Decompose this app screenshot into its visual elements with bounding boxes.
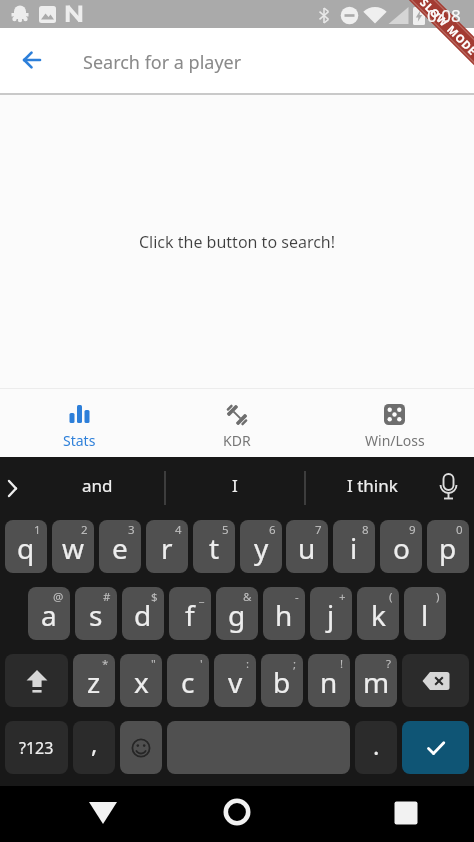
- button[interactable]: o: [380, 520, 422, 573]
- button[interactable]: u: [286, 520, 328, 573]
- staticText: @: [53, 589, 64, 605]
- staticText: e: [112, 529, 128, 567]
- staticText: a: [41, 596, 57, 634]
- staticText: t: [209, 529, 220, 567]
- staticText: #: [103, 589, 111, 605]
- staticText: (: [389, 589, 393, 605]
- staticText: 4: [175, 522, 182, 538]
- button[interactable]: l: [404, 587, 446, 640]
- staticText: and: [82, 474, 113, 497]
- button[interactable]: n: [308, 654, 350, 707]
- button[interactable]: [402, 721, 469, 774]
- button[interactable]: e: [99, 520, 141, 573]
- button[interactable]: s: [75, 587, 117, 640]
- button[interactable]: c: [167, 654, 209, 707]
- button[interactable]: d: [122, 587, 164, 640]
- button[interactable]: p: [427, 520, 469, 573]
- staticText: I think: [347, 474, 398, 497]
- staticText: d: [134, 596, 152, 634]
- staticText: :: [246, 656, 250, 672]
- button[interactable]: [5, 654, 68, 707]
- staticText: v: [228, 663, 243, 701]
- button[interactable]: [22, 50, 42, 70]
- staticText: +: [339, 589, 346, 605]
- button[interactable]: [385, 795, 427, 831]
- staticText: ': [200, 656, 203, 672]
- button[interactable]: v: [214, 654, 256, 707]
- staticText: $: [151, 589, 158, 605]
- staticText: z: [87, 663, 101, 701]
- staticText: k: [371, 596, 386, 634]
- staticText: -: [295, 589, 299, 605]
- button[interactable]: i: [333, 520, 375, 573]
- staticText: n: [320, 663, 338, 701]
- staticText: p: [439, 529, 457, 567]
- staticText: r: [161, 529, 173, 567]
- staticText: 1: [34, 522, 41, 538]
- staticText: ": [151, 656, 156, 672]
- staticText: Win/Loss: [365, 431, 425, 450]
- button[interactable]: z: [73, 654, 115, 707]
- staticText: l: [421, 596, 429, 634]
- button[interactable]: g: [216, 587, 258, 640]
- button[interactable]: k: [357, 587, 399, 640]
- staticText: Click the button to search!: [139, 231, 336, 253]
- button[interactable]: .: [355, 721, 397, 774]
- staticText: Stats: [63, 431, 96, 450]
- staticText: q: [17, 529, 35, 567]
- button[interactable]: t: [193, 520, 235, 573]
- staticText: m: [363, 663, 390, 701]
- staticText: 7: [315, 522, 322, 538]
- button[interactable]: q: [5, 520, 47, 573]
- staticText: x: [134, 663, 149, 701]
- button[interactable]: h: [263, 587, 305, 640]
- button[interactable]: [402, 654, 469, 707]
- button[interactable]: a: [28, 587, 70, 640]
- button[interactable]: r: [146, 520, 188, 573]
- staticText: ;: [293, 656, 297, 672]
- button[interactable]: w: [52, 520, 94, 573]
- button[interactable]: f: [169, 587, 211, 640]
- staticText: I: [232, 474, 238, 497]
- staticText: 8: [362, 522, 369, 538]
- staticText: 3: [128, 522, 135, 538]
- button[interactable]: I think: [305, 457, 440, 513]
- button[interactable]: ?123: [5, 721, 68, 774]
- staticText: 9: [409, 522, 416, 538]
- button[interactable]: j: [310, 587, 352, 640]
- staticText: ,: [91, 727, 98, 760]
- staticText: ): [436, 589, 440, 605]
- staticText: 6: [269, 522, 276, 538]
- staticText: &: [243, 589, 252, 605]
- button[interactable]: b: [261, 654, 303, 707]
- button[interactable]: y: [240, 520, 282, 573]
- button[interactable]: [216, 791, 258, 833]
- staticText: h: [275, 596, 293, 634]
- button[interactable]: and: [30, 457, 165, 513]
- button[interactable]: x: [120, 654, 162, 707]
- staticText: 0: [456, 522, 463, 538]
- button[interactable]: [167, 721, 350, 774]
- staticText: Search for a player: [83, 50, 242, 75]
- staticText: w: [62, 529, 85, 567]
- staticText: u: [298, 529, 316, 567]
- button[interactable]: Win/Loss: [340, 392, 450, 454]
- staticText: _: [199, 589, 205, 605]
- staticText: 5: [222, 522, 229, 538]
- button[interactable]: I: [165, 457, 305, 513]
- button[interactable]: KDR: [182, 392, 292, 454]
- staticText: j: [327, 596, 335, 634]
- staticText: g: [228, 596, 246, 634]
- staticText: b: [273, 663, 291, 701]
- button[interactable]: [82, 795, 124, 831]
- staticText: 2: [81, 522, 88, 538]
- button[interactable]: Stats: [24, 392, 134, 454]
- staticText: y: [254, 529, 269, 567]
- staticText: ?123: [19, 737, 54, 759]
- button[interactable]: m: [355, 654, 397, 707]
- button[interactable]: ,: [73, 721, 115, 774]
- button[interactable]: [120, 721, 162, 774]
- staticText: SLOW MODE: [417, 0, 474, 58]
- staticText: ?: [386, 656, 391, 672]
- staticText: i: [350, 529, 358, 567]
